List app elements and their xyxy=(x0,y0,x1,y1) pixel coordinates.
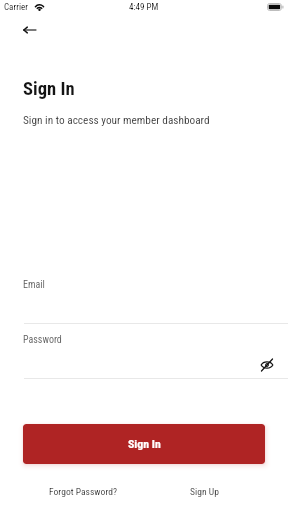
staticText: Password xyxy=(23,334,62,346)
staticText: Sign in to access your member dashboard xyxy=(23,114,210,127)
staticText: Sign In xyxy=(128,437,161,451)
staticText: Sign Up xyxy=(190,486,219,497)
button[interactable]: Back xyxy=(16,16,44,44)
staticText: Email xyxy=(23,279,45,291)
button[interactable]: Show password xyxy=(256,354,278,376)
staticText: Forgot Password? xyxy=(49,486,118,497)
staticText: 4:49 PM xyxy=(129,2,159,13)
button[interactable]: Sign Up xyxy=(174,480,235,502)
staticText: Sign In xyxy=(23,78,75,100)
staticText: Carrier xyxy=(4,2,28,13)
button[interactable]: Sign In xyxy=(23,424,265,464)
button[interactable]: Forgot Password? xyxy=(30,480,136,502)
